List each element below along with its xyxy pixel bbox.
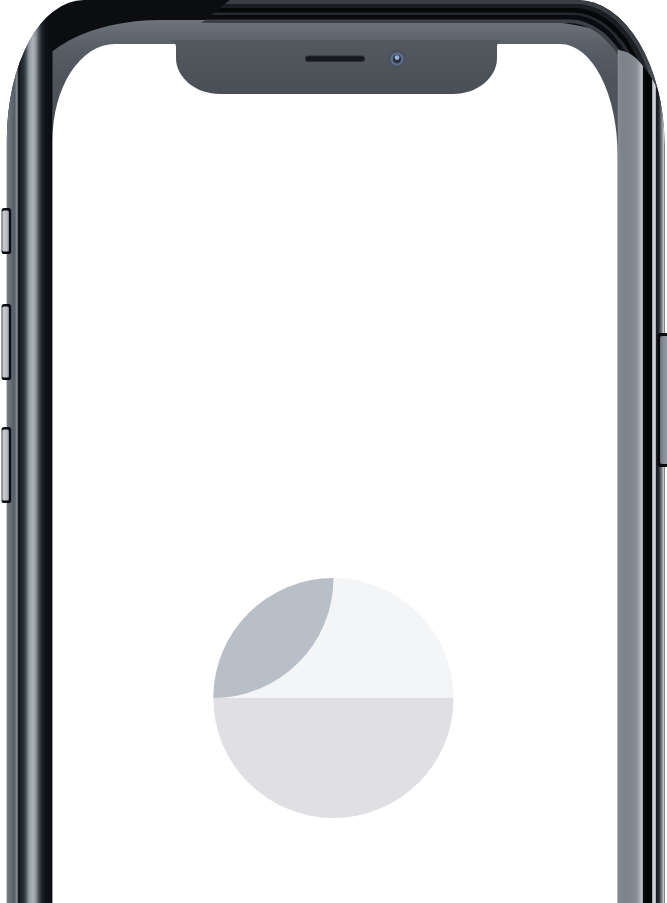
button[interactable]: Phone mock-up with blank app screen: [0, 0, 667, 903]
